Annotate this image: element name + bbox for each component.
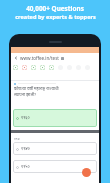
button[interactable]: [13, 65, 18, 70]
button[interactable]: [22, 65, 27, 70]
button[interactable]: १९६०: [13, 109, 97, 127]
staticText: १९४: [14, 136, 20, 141]
staticText: १९४७: [21, 146, 30, 152]
staticText: १९५०: [21, 164, 30, 170]
other: Back: [14, 56, 18, 60]
staticText: स्थापना झाली?: [14, 92, 37, 98]
button[interactable]: [31, 65, 36, 70]
button[interactable]: Back: [11, 53, 99, 63]
staticText: created by experts & toppers: [15, 13, 96, 21]
button[interactable]: [40, 65, 45, 70]
staticText: 40,000+ Questions: [26, 4, 84, 13]
staticText: १९६०: [21, 115, 30, 121]
button[interactable]: Next question: [82, 168, 91, 177]
staticText: www.toffee.in/test: [20, 55, 59, 61]
button[interactable]: १९५०: [13, 160, 97, 173]
button[interactable]: १९४७: [13, 142, 97, 155]
staticText: कोणत्या वर्षी महाराष्ट्र राज्याची: [14, 86, 59, 92]
button[interactable]: [49, 65, 54, 70]
